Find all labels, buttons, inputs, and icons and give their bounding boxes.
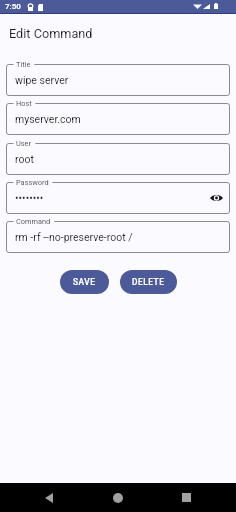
staticText: 7:50 bbox=[5, 2, 21, 11]
staticText: SAVE bbox=[73, 277, 96, 287]
button[interactable]: SAVE bbox=[60, 270, 109, 294]
button[interactable]: Password bbox=[6, 182, 230, 214]
button[interactable]: Recent apps bbox=[176, 483, 196, 512]
staticText: root bbox=[15, 153, 34, 165]
button[interactable]: Toggle password visibility bbox=[208, 190, 224, 206]
staticText: User bbox=[16, 139, 32, 148]
button[interactable]: Home bbox=[108, 483, 128, 512]
staticText: rm -rf --no-preserve-root / bbox=[15, 231, 133, 243]
staticText: Command bbox=[16, 217, 51, 226]
button[interactable]: Command bbox=[6, 221, 230, 253]
button[interactable]: Host bbox=[6, 103, 230, 135]
button[interactable]: DELETE bbox=[120, 270, 177, 294]
button[interactable]: Title bbox=[6, 64, 230, 96]
staticText: •••••••• bbox=[15, 192, 44, 204]
staticText: myserver.com bbox=[15, 113, 81, 125]
staticText: Edit Command bbox=[9, 26, 93, 41]
button[interactable]: Back bbox=[39, 483, 59, 512]
staticText: DELETE bbox=[132, 277, 165, 287]
staticText: wipe server bbox=[15, 74, 69, 86]
staticText: Host bbox=[16, 99, 32, 108]
button[interactable]: User bbox=[6, 143, 230, 175]
staticText: Password bbox=[16, 178, 49, 187]
staticText: Title bbox=[16, 60, 31, 69]
